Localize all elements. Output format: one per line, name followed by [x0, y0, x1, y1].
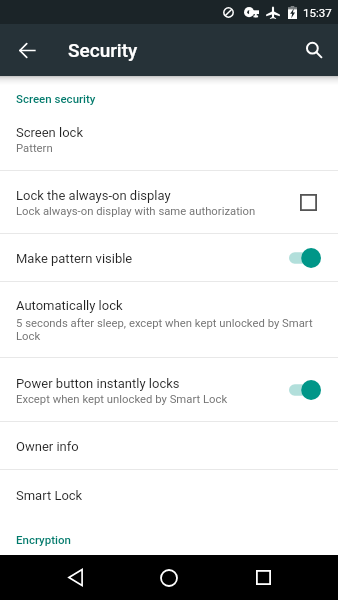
button[interactable]: Owner info [0, 422, 338, 469]
button[interactable]: Screen lock [0, 112, 338, 170]
staticText: Make pattern visible [16, 251, 133, 266]
staticText: Lock always-on display with same authori… [16, 205, 256, 218]
staticText: Screen lock [16, 125, 83, 140]
staticText: Owner info [16, 439, 79, 454]
button[interactable]: Automatically lock [0, 282, 338, 357]
staticText: 5 seconds after sleep, except when kept … [16, 317, 319, 343]
staticText: Smart Lock [16, 488, 83, 503]
button[interactable]: Recent apps [216, 555, 310, 600]
staticText: Screen security [16, 92, 96, 105]
staticText: 15:37 [303, 6, 332, 19]
button[interactable]: Navigate up [7, 30, 47, 70]
staticText: Except when kept unlocked by Smart Lock [16, 393, 228, 406]
staticText: Power button instantly locks [16, 376, 180, 391]
button[interactable]: Switch [289, 247, 321, 269]
button[interactable]: Search [294, 30, 334, 70]
staticText: Pattern [16, 142, 53, 155]
button[interactable]: Home [122, 555, 216, 600]
button[interactable]: Back [28, 555, 122, 600]
button[interactable]: Checkbox [289, 186, 321, 218]
button[interactable]: Make pattern visible [0, 234, 338, 281]
staticText: Security [68, 39, 138, 61]
button[interactable]: Smart Lock [0, 470, 338, 519]
button[interactable]: Switch [289, 379, 321, 401]
staticText: Automatically lock [16, 298, 123, 313]
staticText: Encryption [16, 533, 71, 546]
button[interactable]: Lock the always-on display [0, 171, 338, 233]
staticText: Lock the always-on display [16, 188, 171, 203]
button[interactable]: Power button instantly locks [0, 358, 338, 421]
